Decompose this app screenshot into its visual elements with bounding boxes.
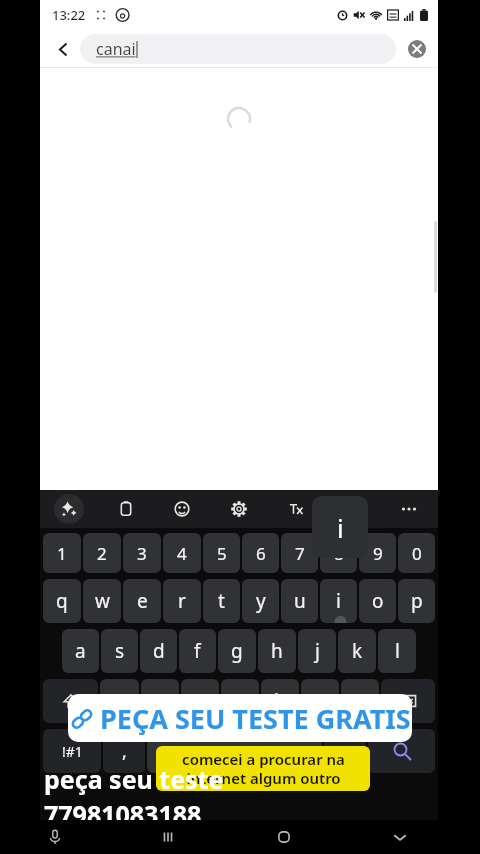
button[interactable]: PEÇA SEU TESTE GRATIS bbox=[68, 694, 412, 742]
button[interactable]: AI assist bbox=[54, 494, 84, 524]
staticText: , bbox=[122, 739, 127, 764]
button[interactable]: Clear bbox=[402, 34, 432, 64]
button[interactable]: Period bbox=[324, 729, 366, 773]
staticText: o bbox=[372, 588, 384, 614]
button[interactable]: u bbox=[281, 579, 318, 623]
staticText: e bbox=[137, 588, 148, 614]
button[interactable]: 6 bbox=[242, 533, 279, 573]
staticText: c bbox=[195, 688, 205, 714]
staticText: 2 bbox=[97, 542, 107, 565]
staticText: 8 bbox=[334, 542, 344, 565]
staticText: i bbox=[337, 510, 344, 545]
button[interactable]: 9 bbox=[359, 533, 396, 573]
staticText: 77981083188 bbox=[44, 797, 202, 831]
button[interactable]: 1 bbox=[43, 533, 81, 573]
button[interactable]: 7 bbox=[281, 533, 318, 573]
button[interactable]: Backspace bbox=[381, 679, 435, 723]
staticText: v bbox=[235, 688, 245, 714]
button[interactable]: n bbox=[301, 679, 339, 723]
staticText: g bbox=[231, 638, 243, 664]
button[interactable]: 3 bbox=[123, 533, 161, 573]
staticText: 3 bbox=[137, 542, 147, 565]
button[interactable]: t bbox=[203, 579, 240, 623]
staticText: w bbox=[95, 588, 110, 614]
button[interactable]: Emoji bbox=[167, 494, 197, 524]
staticText: PEÇA SEU TESTE GRATIS bbox=[100, 700, 411, 737]
button[interactable]: 2 bbox=[83, 533, 121, 573]
button[interactable]: v bbox=[221, 679, 259, 723]
button[interactable]: b bbox=[261, 679, 299, 723]
staticText: !#1 bbox=[62, 742, 83, 761]
button[interactable]: x bbox=[141, 679, 179, 723]
staticText: 1 bbox=[57, 542, 67, 565]
button[interactable]: i bbox=[320, 579, 357, 623]
staticText: 9 bbox=[373, 542, 383, 565]
staticText: m bbox=[351, 688, 369, 714]
staticText: j bbox=[315, 638, 320, 664]
button[interactable]: 5 bbox=[203, 533, 240, 573]
button[interactable]: l bbox=[378, 629, 416, 673]
button[interactable]: Recents bbox=[110, 820, 226, 854]
button[interactable]: 0 bbox=[398, 533, 435, 573]
button[interactable]: Clipboard bbox=[111, 494, 141, 524]
staticText: f bbox=[194, 638, 201, 664]
button[interactable]: Search bbox=[368, 729, 435, 773]
button[interactable]: 8 bbox=[320, 533, 357, 573]
staticText: k bbox=[352, 638, 363, 664]
button[interactable]: Back bbox=[46, 32, 80, 66]
button[interactable]: Comma bbox=[103, 729, 145, 773]
staticText: i bbox=[336, 588, 341, 614]
button[interactable]: Translate bbox=[281, 494, 311, 524]
staticText: t bbox=[218, 588, 225, 614]
staticText: x bbox=[155, 688, 166, 714]
button[interactable]: 4 bbox=[163, 533, 201, 573]
staticText: 6 bbox=[256, 542, 266, 565]
staticText: comecei a procurar na internet algum out… bbox=[182, 749, 345, 788]
button[interactable]: e bbox=[123, 579, 161, 623]
button[interactable]: d bbox=[140, 629, 177, 673]
staticText: 7 bbox=[295, 542, 305, 565]
button[interactable]: z bbox=[100, 679, 139, 723]
staticText: z bbox=[115, 688, 124, 714]
staticText: q bbox=[56, 588, 68, 614]
button[interactable]: !#1 bbox=[43, 729, 101, 773]
button[interactable]: canai bbox=[80, 34, 396, 64]
button[interactable]: o bbox=[359, 579, 396, 623]
button[interactable]: j bbox=[298, 629, 336, 673]
staticText: h bbox=[271, 638, 283, 664]
staticText: p bbox=[411, 588, 423, 614]
button[interactable]: a bbox=[62, 629, 99, 673]
button[interactable]: Settings bbox=[224, 494, 254, 524]
button[interactable]: m bbox=[341, 679, 379, 723]
staticText: u bbox=[294, 588, 306, 614]
button[interactable]: Shift bbox=[43, 679, 98, 723]
staticText: 13:22 bbox=[52, 6, 86, 24]
button[interactable]: More options bbox=[394, 494, 424, 524]
button[interactable]: Voice input bbox=[0, 820, 110, 854]
staticText: l bbox=[395, 638, 400, 664]
staticText: b bbox=[274, 688, 286, 714]
staticText: y bbox=[256, 588, 266, 614]
button[interactable]: p bbox=[398, 579, 435, 623]
button[interactable]: Hide keyboard bbox=[342, 820, 458, 854]
staticText: s bbox=[115, 638, 125, 664]
button[interactable]: f bbox=[179, 629, 216, 673]
button[interactable]: k bbox=[338, 629, 376, 673]
button[interactable]: s bbox=[101, 629, 138, 673]
staticText: r bbox=[178, 588, 186, 614]
button[interactable]: Space bbox=[147, 729, 322, 773]
staticText: 4 bbox=[177, 542, 187, 565]
button[interactable]: Scan text bbox=[337, 494, 367, 524]
button[interactable]: h bbox=[258, 629, 296, 673]
staticText: 0 bbox=[412, 542, 422, 565]
button[interactable]: g bbox=[218, 629, 256, 673]
button[interactable]: y bbox=[242, 579, 279, 623]
button[interactable]: r bbox=[163, 579, 201, 623]
button[interactable]: Home bbox=[226, 820, 342, 854]
staticText: . bbox=[343, 739, 348, 764]
staticText: 5 bbox=[217, 542, 227, 565]
button[interactable]: c bbox=[181, 679, 219, 723]
staticText: a bbox=[75, 638, 86, 664]
button[interactable]: w bbox=[83, 579, 121, 623]
button[interactable]: q bbox=[43, 579, 81, 623]
